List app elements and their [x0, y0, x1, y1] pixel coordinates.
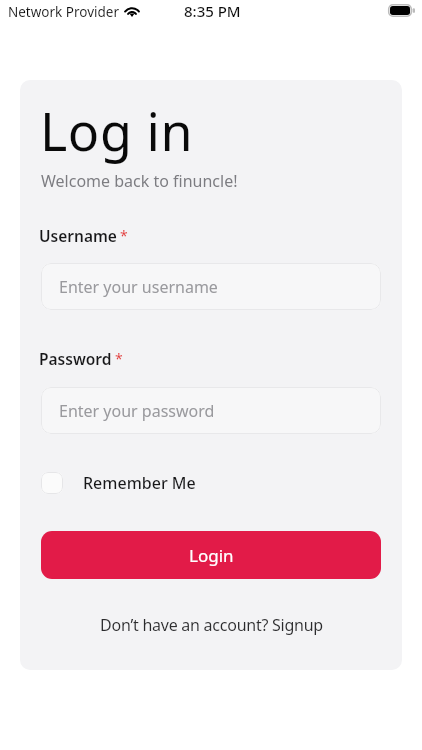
- other: Battery full: [388, 4, 415, 17]
- button[interactable]: Don’t have an account? Signup: [100, 614, 323, 636]
- staticText: *: [115, 349, 123, 368]
- button[interactable]: Remember Me: [41, 472, 196, 494]
- staticText: Username: [39, 225, 117, 246]
- staticText: Network Provider: [8, 3, 120, 21]
- button[interactable]: Enter your password: [41, 387, 381, 434]
- staticText: Password: [39, 348, 112, 369]
- staticText: Login: [189, 544, 234, 567]
- staticText: Log in: [40, 95, 194, 166]
- staticText: Welcome back to finuncle!: [41, 170, 238, 192]
- staticText: Enter your password: [59, 400, 215, 422]
- staticText: *: [120, 226, 128, 245]
- button[interactable]: Enter your username: [41, 263, 381, 310]
- other: Wi-Fi signal: [123, 5, 141, 17]
- staticText: Enter your username: [59, 276, 218, 298]
- staticText: Remember Me: [83, 472, 196, 494]
- button[interactable]: Login: [41, 531, 381, 579]
- staticText: 8:35 PM: [184, 1, 241, 21]
